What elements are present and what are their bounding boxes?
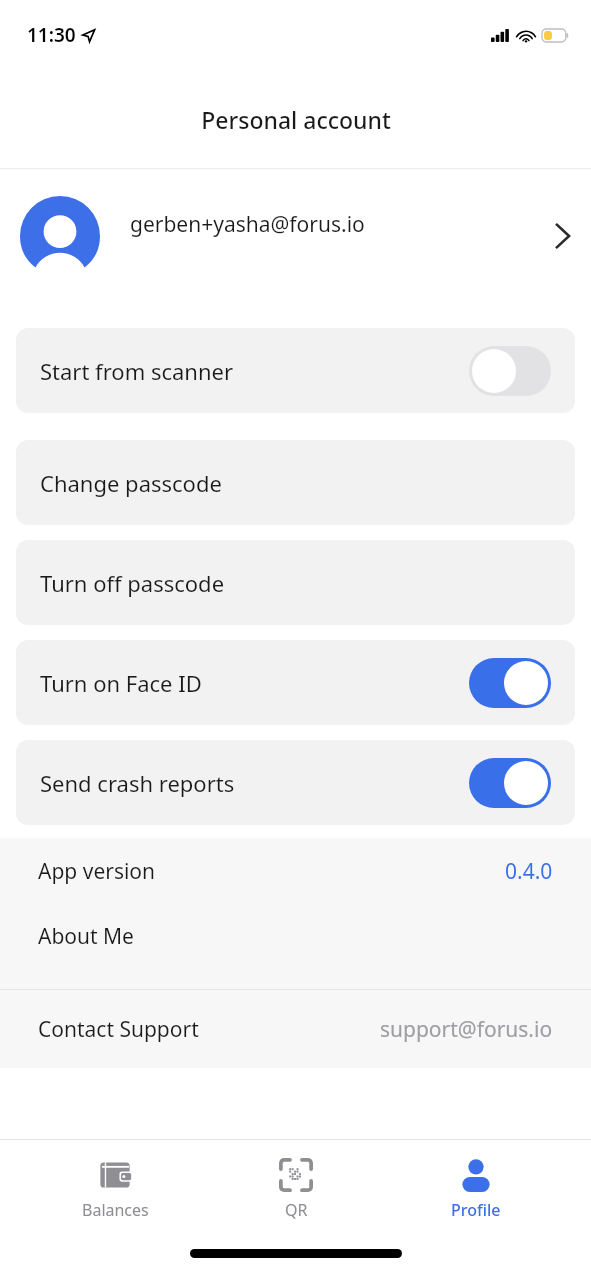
staticText: Balances: [82, 1199, 149, 1221]
button[interactable]: Toggle on: [469, 658, 551, 708]
other: QR: [279, 1158, 313, 1192]
staticText: Change passcode: [40, 468, 551, 498]
button[interactable]: App version: [0, 838, 591, 904]
button[interactable]: Send crash reports: [16, 740, 575, 825]
staticText: Profile: [451, 1199, 501, 1221]
button[interactable]: QR: [231, 1152, 361, 1225]
staticText: gerben+yasha@forus.io: [130, 210, 555, 239]
button[interactable]: About Me: [0, 904, 591, 968]
staticText: Personal account: [201, 104, 391, 135]
other: Profile: [459, 1158, 493, 1192]
button[interactable]: Profile: [411, 1152, 541, 1225]
staticText: Turn on Face ID: [40, 668, 469, 698]
staticText: Start from scanner: [40, 356, 469, 386]
staticText: 11:30: [27, 22, 76, 48]
button[interactable]: Toggle off: [469, 346, 551, 396]
staticText: Contact Support: [38, 1015, 380, 1044]
button[interactable]: gerben+yasha@forus.io: [0, 169, 591, 302]
button[interactable]: Start from scanner: [16, 328, 575, 413]
button[interactable]: Change passcode: [16, 440, 575, 525]
staticText: 0.4.0: [505, 857, 553, 886]
staticText: App version: [38, 857, 505, 886]
button[interactable]: Toggle on: [469, 758, 551, 808]
staticText: Turn off passcode: [40, 568, 551, 598]
staticText: QR: [285, 1199, 308, 1221]
other: Balances: [98, 1158, 132, 1192]
button[interactable]: Turn on Face ID: [16, 640, 575, 725]
button[interactable]: Turn off passcode: [16, 540, 575, 625]
staticText: support@forus.io: [380, 1015, 553, 1044]
button[interactable]: Balances: [50, 1152, 180, 1225]
staticText: Send crash reports: [40, 768, 469, 798]
button[interactable]: Contact Support: [0, 990, 591, 1068]
staticText: About Me: [38, 922, 134, 951]
